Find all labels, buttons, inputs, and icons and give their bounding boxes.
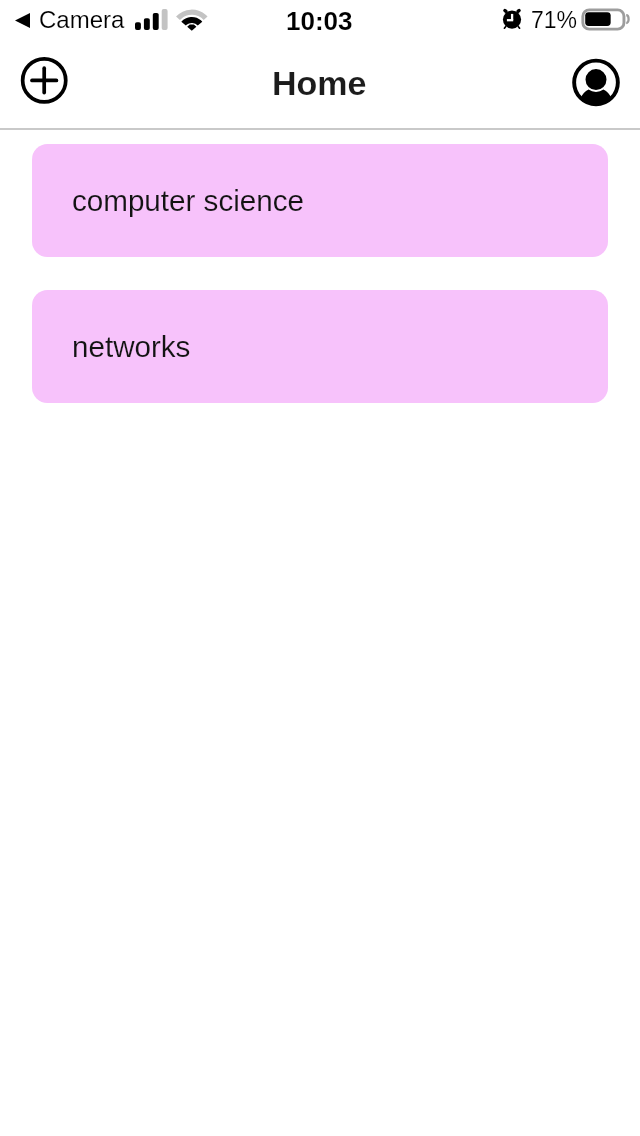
staticText: Home (272, 64, 367, 102)
button[interactable]: Account (572, 58, 620, 106)
staticText: computer science (72, 184, 304, 217)
button[interactable]: computer science (32, 144, 608, 257)
staticText: 10:03 (286, 6, 353, 35)
staticText: Camera (39, 6, 125, 33)
staticText: networks (72, 330, 191, 363)
staticText: 71% (531, 7, 578, 33)
button[interactable]: networks (32, 290, 608, 403)
button[interactable]: Add (20, 56, 68, 104)
